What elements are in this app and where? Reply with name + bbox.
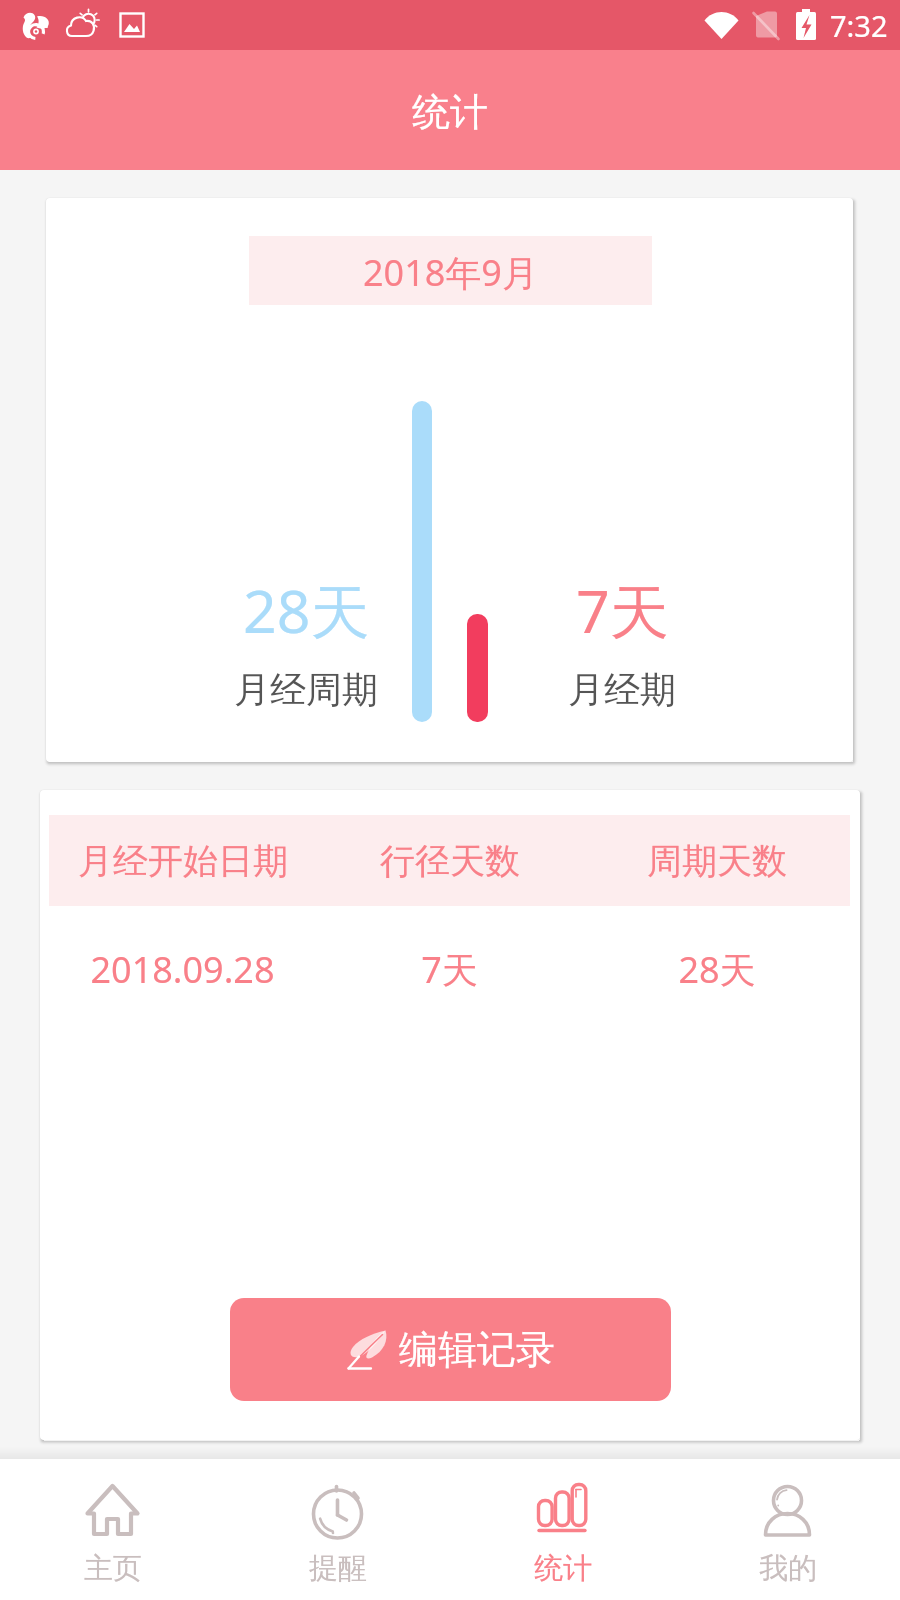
- staticText: 7:32: [830, 6, 888, 45]
- staticText: 2018年9月: [363, 248, 538, 297]
- staticText: 我的: [759, 1550, 817, 1587]
- staticText: 月经开始日期: [78, 839, 288, 883]
- staticText: 周期天数: [647, 839, 787, 883]
- staticText: 编辑记录: [399, 1325, 555, 1374]
- staticText: 统计: [412, 88, 488, 136]
- button[interactable]: Statistics: [450, 1459, 675, 1600]
- button[interactable]: Home: [0, 1459, 225, 1600]
- staticText: 2018.09.28: [90, 945, 275, 994]
- staticText: 7天: [421, 945, 478, 994]
- staticText: 主页: [84, 1550, 142, 1587]
- staticText: 月经期: [568, 667, 676, 712]
- staticText: 统计: [534, 1550, 592, 1587]
- button[interactable]: 2018年9月: [249, 236, 652, 305]
- staticText: 行径天数: [380, 839, 520, 883]
- button[interactable]: Profile: [675, 1459, 900, 1600]
- button[interactable]: 编辑记录: [230, 1298, 671, 1401]
- staticText: 月经周期: [234, 667, 378, 712]
- button[interactable]: Reminder: [225, 1459, 450, 1600]
- staticText: 28天: [678, 945, 756, 994]
- staticText: 提醒: [309, 1550, 367, 1587]
- staticText: 28天: [243, 570, 370, 651]
- button[interactable]: 2018.09.28: [49, 944, 850, 994]
- staticText: 7天: [576, 570, 669, 651]
